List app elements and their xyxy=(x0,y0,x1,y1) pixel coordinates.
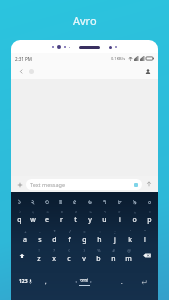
button[interactable]: ৮ xyxy=(112,194,127,208)
staticText: d xyxy=(52,235,57,245)
button[interactable]: / xyxy=(62,227,77,246)
button[interactable]: ! xyxy=(32,246,46,265)
button[interactable]: ৩ xyxy=(40,208,54,227)
staticText: ) xyxy=(83,248,85,253)
staticText: i xyxy=(119,215,121,225)
button[interactable]: Text message xyxy=(26,179,142,190)
button[interactable]: ৮ xyxy=(112,208,127,227)
staticText: " xyxy=(144,229,146,234)
button[interactable]: + xyxy=(17,227,32,246)
staticText: ১ xyxy=(18,198,21,205)
staticText: ৯ xyxy=(134,210,136,214)
button[interactable]: @ xyxy=(121,246,136,265)
button[interactable]: ( xyxy=(61,246,76,265)
staticText: @ xyxy=(127,248,131,253)
button[interactable]: # xyxy=(106,246,121,265)
staticText: t xyxy=(74,215,77,225)
staticText: o xyxy=(132,215,137,225)
staticText: ৩ xyxy=(46,210,49,214)
staticText: 2:31 PM xyxy=(15,56,32,62)
button[interactable]: 123 xyxy=(12,265,38,298)
button[interactable]: : xyxy=(92,227,107,246)
button[interactable]: Shift xyxy=(12,246,32,265)
button[interactable]: Send xyxy=(143,178,155,190)
staticText: ৩ xyxy=(45,198,49,205)
staticText: n xyxy=(111,254,116,264)
staticText: ? xyxy=(53,248,55,253)
button[interactable]: ২ xyxy=(26,194,40,208)
button[interactable]: ৫ xyxy=(68,194,82,208)
button[interactable]: . xyxy=(114,265,130,298)
staticText: Text message xyxy=(30,181,66,188)
staticText: z xyxy=(37,254,41,264)
button[interactable]: ৯ xyxy=(127,194,142,208)
staticText: ০ xyxy=(148,198,152,205)
button[interactable]: ১ xyxy=(12,194,26,208)
button[interactable]: ' xyxy=(122,227,137,246)
button[interactable]: Contact details xyxy=(142,66,153,77)
staticText: ২ xyxy=(32,210,34,214)
button[interactable]: " xyxy=(137,227,152,246)
staticText: ! xyxy=(38,248,40,253)
staticText: a xyxy=(23,235,27,245)
staticText: Avro xyxy=(73,13,97,28)
staticText: ৫ xyxy=(75,210,77,214)
staticText: b xyxy=(96,254,101,264)
button[interactable]: ০ xyxy=(142,194,157,208)
button[interactable]: Enter xyxy=(130,265,157,298)
button[interactable]: - xyxy=(32,227,47,246)
button[interactable]: ৭ xyxy=(97,208,112,227)
button[interactable]: ৯ xyxy=(127,208,142,227)
button[interactable]: ৪ xyxy=(54,194,68,208)
button[interactable]: Backspace xyxy=(136,246,157,265)
button[interactable]: Space xyxy=(54,265,114,298)
button[interactable]: ৫ xyxy=(68,208,82,227)
staticText: ৮ xyxy=(118,198,122,205)
button[interactable]: % xyxy=(91,246,106,265)
button[interactable]: ৭ xyxy=(97,194,112,208)
staticText: c xyxy=(67,254,71,264)
button[interactable]: ) xyxy=(76,246,91,265)
button[interactable]: ৬ xyxy=(82,208,97,227)
staticText: w xyxy=(30,215,36,225)
button[interactable]: * xyxy=(47,227,62,246)
staticText: ০ xyxy=(149,210,151,214)
staticText: . xyxy=(121,278,123,286)
staticText: e xyxy=(45,215,49,225)
staticText: h xyxy=(97,235,102,245)
staticText: ৪ xyxy=(61,210,63,214)
button[interactable]: ২ xyxy=(26,208,40,227)
staticText: , xyxy=(45,278,47,286)
staticText: ▸ xyxy=(90,279,93,284)
button[interactable]: ? xyxy=(46,246,61,265)
button[interactable]: ৩ xyxy=(40,194,54,208)
staticText: ৮ xyxy=(118,210,121,214)
button[interactable]: Back xyxy=(16,66,27,77)
staticText: ৭ xyxy=(103,198,107,205)
staticText: v xyxy=(82,254,86,264)
staticText: 123 xyxy=(19,278,28,285)
button[interactable]: ; xyxy=(107,227,122,246)
button[interactable]: ৬ xyxy=(82,194,97,208)
staticText: u xyxy=(102,215,107,225)
staticText: y xyxy=(88,215,92,225)
staticText: 0.1KB/s xyxy=(111,56,126,61)
staticText: % xyxy=(97,248,101,253)
button[interactable]: Add attachment xyxy=(14,179,25,190)
button[interactable]: ৪ xyxy=(54,208,68,227)
staticText: ৬ xyxy=(88,198,92,205)
staticText: s xyxy=(38,235,42,245)
staticText: ৫ xyxy=(73,198,77,205)
staticText: ৪ xyxy=(59,198,63,205)
staticText: m xyxy=(125,254,132,264)
button[interactable]: ১ xyxy=(12,208,26,227)
staticText: ; xyxy=(114,229,116,234)
staticText: ◂ xyxy=(75,279,78,284)
staticText: অআ xyxy=(80,278,88,284)
button[interactable]: ০ xyxy=(142,208,157,227)
staticText: j xyxy=(114,235,116,245)
button[interactable]: , xyxy=(38,265,54,298)
button[interactable]: = xyxy=(77,227,92,246)
staticText: ৬ xyxy=(89,210,92,214)
staticText: x xyxy=(52,254,56,264)
